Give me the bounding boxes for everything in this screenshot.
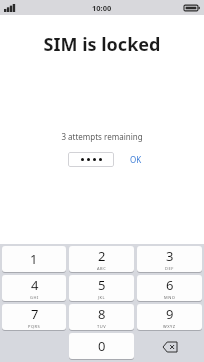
staticText: 5 (98, 276, 106, 294)
staticText: 8 (98, 305, 106, 323)
button[interactable]: Backspace (137, 333, 202, 360)
button[interactable]: 7 (2, 304, 66, 330)
staticText: 10:00 (92, 3, 112, 13)
staticText: 0 (98, 337, 106, 355)
staticText: GHI (30, 295, 39, 300)
button[interactable]: PIN entry field (68, 152, 114, 167)
staticText: JKL (98, 295, 106, 300)
staticText: 3 attempts remaining (0, 131, 204, 142)
staticText: PQRS (28, 324, 41, 329)
staticText: 2 (98, 247, 106, 265)
staticText: 9 (166, 305, 174, 323)
staticText: 4 (31, 276, 39, 294)
staticText: MNO (164, 295, 176, 300)
button[interactable]: OK (127, 152, 145, 167)
button[interactable]: 5 (69, 275, 134, 301)
button[interactable]: 6 (137, 275, 202, 301)
button[interactable]: 9 (137, 304, 202, 330)
button[interactable]: 0 (69, 333, 134, 359)
staticText: 6 (166, 276, 174, 294)
staticText: TUV (97, 324, 107, 329)
button[interactable]: 2 (69, 246, 134, 272)
staticText: 7 (31, 305, 39, 323)
staticText: WXYZ (163, 324, 176, 329)
staticText: 1 (30, 250, 38, 268)
button[interactable]: 1 (2, 246, 66, 272)
staticText: ABC (97, 266, 107, 271)
staticText: DEF (165, 266, 174, 271)
button[interactable]: 4 (2, 275, 66, 301)
button[interactable]: 8 (69, 304, 134, 330)
staticText: SIM is locked (0, 32, 204, 57)
button[interactable]: 3 (137, 246, 202, 272)
staticText: 3 (166, 247, 174, 265)
staticText: OK (130, 154, 142, 165)
